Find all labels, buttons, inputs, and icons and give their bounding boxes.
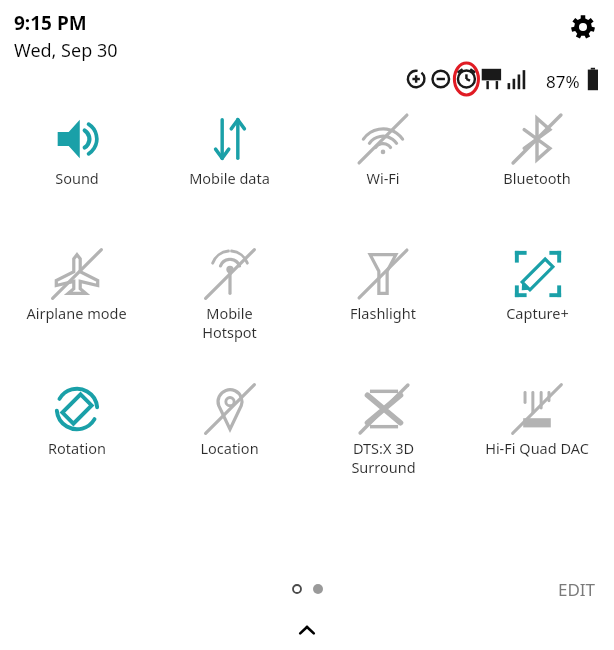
staticText: DTS:X 3D Surround	[351, 438, 416, 477]
staticText: EDIT	[558, 578, 596, 601]
button[interactable]: DTS:X 3D Surround	[349, 386, 418, 477]
button[interactable]: Settings	[566, 10, 600, 44]
button[interactable]: Bluetooth	[501, 116, 573, 188]
staticText: Rotation	[48, 438, 106, 458]
staticText: Capture+	[506, 303, 569, 323]
button[interactable]: Sound	[52, 116, 102, 188]
button[interactable]: Flashlight	[348, 251, 418, 323]
staticText: Mobile Hotspot	[202, 303, 257, 342]
staticText: 9:15 PM	[14, 10, 87, 36]
staticText: Bluetooth	[503, 168, 571, 188]
staticText: 87%	[546, 70, 580, 93]
button[interactable]: Hi-Fi Quad DAC	[483, 386, 591, 458]
staticText: Wed, Sep 30	[14, 38, 118, 63]
staticText: Sound	[55, 168, 99, 188]
button[interactable]: Airplane mode	[24, 251, 129, 323]
staticText: Hi-Fi Quad DAC	[485, 438, 589, 458]
staticText: Airplane mode	[26, 303, 127, 323]
button[interactable]: Capture+	[504, 251, 571, 323]
staticText: Wi-Fi	[366, 168, 400, 188]
staticText: Location	[200, 438, 259, 458]
button[interactable]: Wi-Fi	[358, 116, 408, 188]
button[interactable]: Rotation	[46, 386, 108, 458]
button[interactable]: Collapse	[287, 612, 327, 650]
button[interactable]: Location	[198, 386, 261, 458]
button[interactable]: EDIT	[558, 578, 596, 601]
staticText: Mobile data	[189, 168, 270, 188]
button[interactable]: Mobile data	[187, 116, 272, 188]
staticText: Flashlight	[350, 303, 416, 323]
button[interactable]: Mobile Hotspot	[200, 251, 259, 342]
